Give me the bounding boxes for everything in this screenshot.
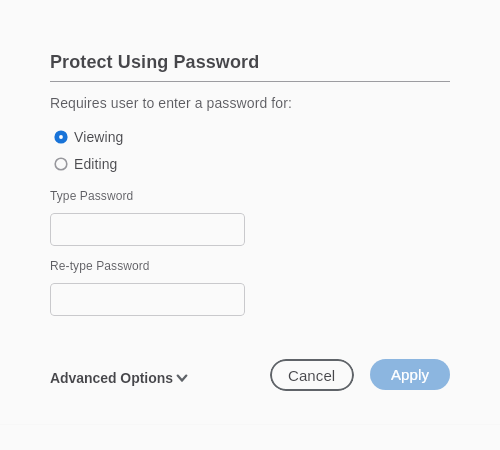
staticText: Cancel — [288, 367, 336, 384]
staticText: Editing — [74, 156, 118, 172]
staticText: Advanced Options — [50, 370, 173, 386]
button[interactable]: Password input — [50, 213, 245, 246]
button[interactable]: Apply — [370, 359, 450, 390]
staticText: Re-type Password — [50, 259, 150, 272]
staticText: Protect Using Password — [50, 52, 260, 72]
button[interactable]: Editing — [50, 153, 118, 175]
button[interactable]: Password input — [50, 283, 245, 316]
staticText: Viewing — [74, 129, 124, 145]
staticText: Type Password — [50, 189, 134, 202]
staticText: Apply — [391, 366, 430, 383]
button[interactable]: Advanced Options — [50, 369, 188, 387]
staticText: Requires user to enter a password for: — [50, 95, 292, 111]
button[interactable]: Viewing — [50, 126, 124, 148]
button[interactable]: Cancel — [270, 359, 354, 391]
